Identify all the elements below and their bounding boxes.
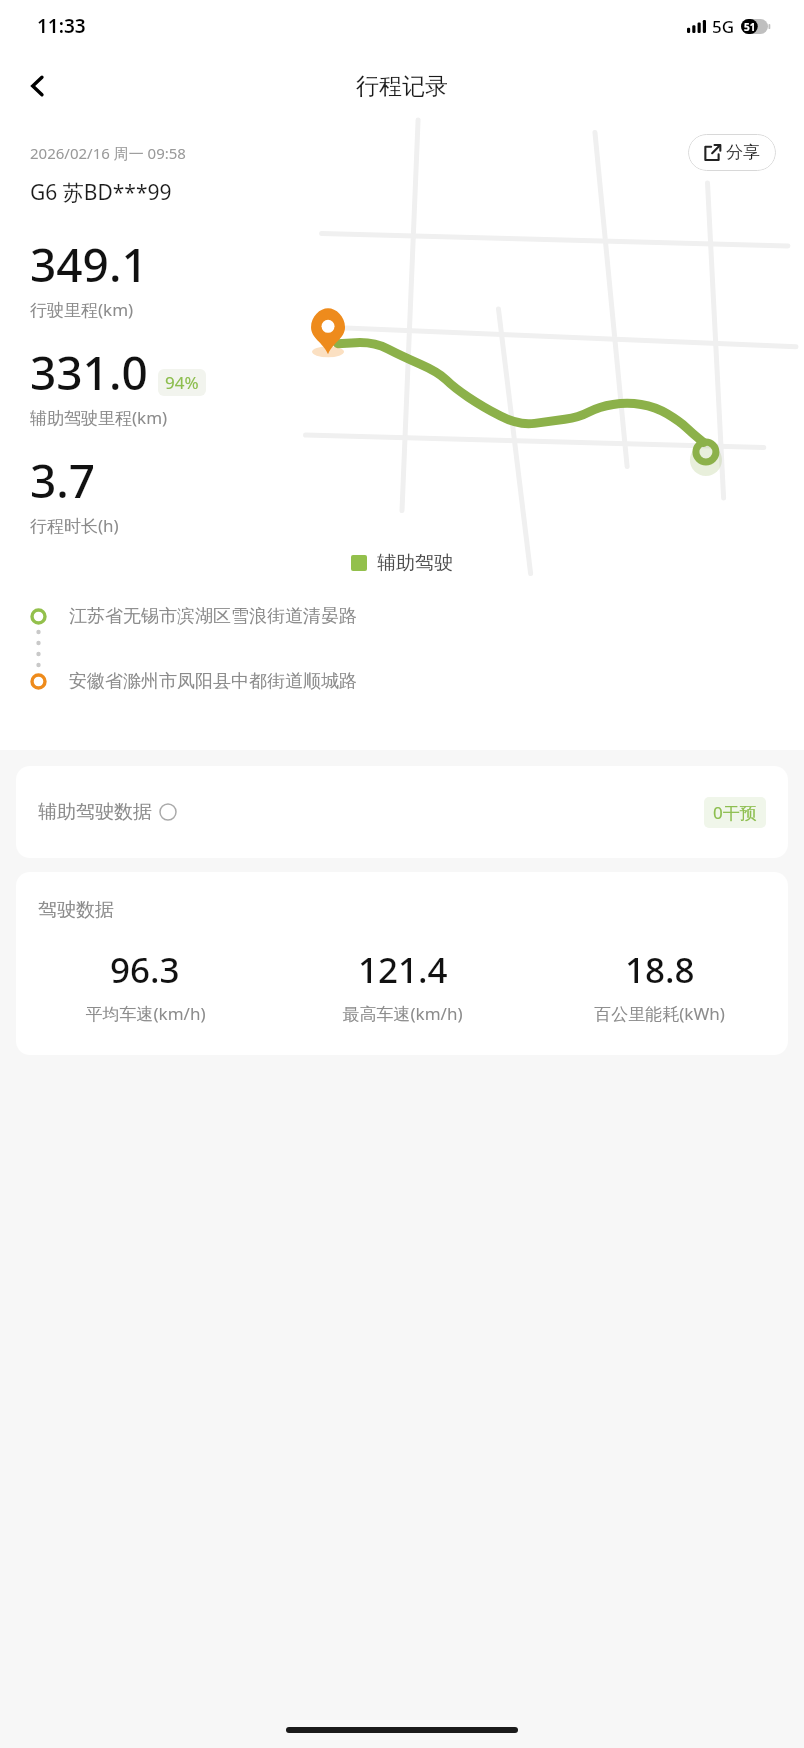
staticText: 349.1: [30, 233, 148, 296]
staticText: 3.7: [30, 449, 96, 512]
staticText: 18.8: [625, 946, 695, 994]
staticText: 百公里能耗(kWh): [594, 1002, 725, 1025]
staticText: 行程记录: [356, 72, 448, 101]
staticText: 辅助驾驶: [377, 551, 453, 575]
staticText: 安徽省滁州市凤阳县中都街道顺城路: [69, 670, 357, 693]
staticText: 最高车速(km/h): [342, 1002, 463, 1025]
staticText: 121.4: [358, 946, 448, 994]
staticText: 51: [744, 20, 756, 34]
staticText: 94%: [165, 371, 199, 394]
button[interactable]: Back: [14, 62, 62, 110]
staticText: 辅助驾驶数据: [38, 800, 152, 824]
staticText: 0干预: [713, 801, 757, 824]
staticText: 江苏省无锡市滨湖区雪浪街道清晏路: [69, 605, 357, 628]
staticText: 辅助驾驶里程(km): [30, 406, 168, 429]
button[interactable]: 辅助驾驶数据: [16, 766, 788, 858]
staticText: 96.3: [110, 946, 180, 994]
staticText: G6 苏BD***99: [30, 178, 172, 207]
staticText: 2026/02/16 周一 09:58: [30, 143, 186, 163]
staticText: 分享: [726, 142, 760, 163]
button[interactable]: 驾驶数据: [16, 872, 788, 1055]
staticText: 5G: [712, 15, 735, 38]
staticText: 行驶里程(km): [30, 298, 134, 321]
staticText: 331.0: [30, 341, 148, 404]
staticText: 平均车速(km/h): [85, 1002, 206, 1025]
staticText: 行程时长(h): [30, 514, 119, 537]
staticText: 驾驶数据: [38, 898, 114, 922]
staticText: 11:33: [37, 13, 86, 39]
button[interactable]: 分享: [688, 134, 776, 171]
